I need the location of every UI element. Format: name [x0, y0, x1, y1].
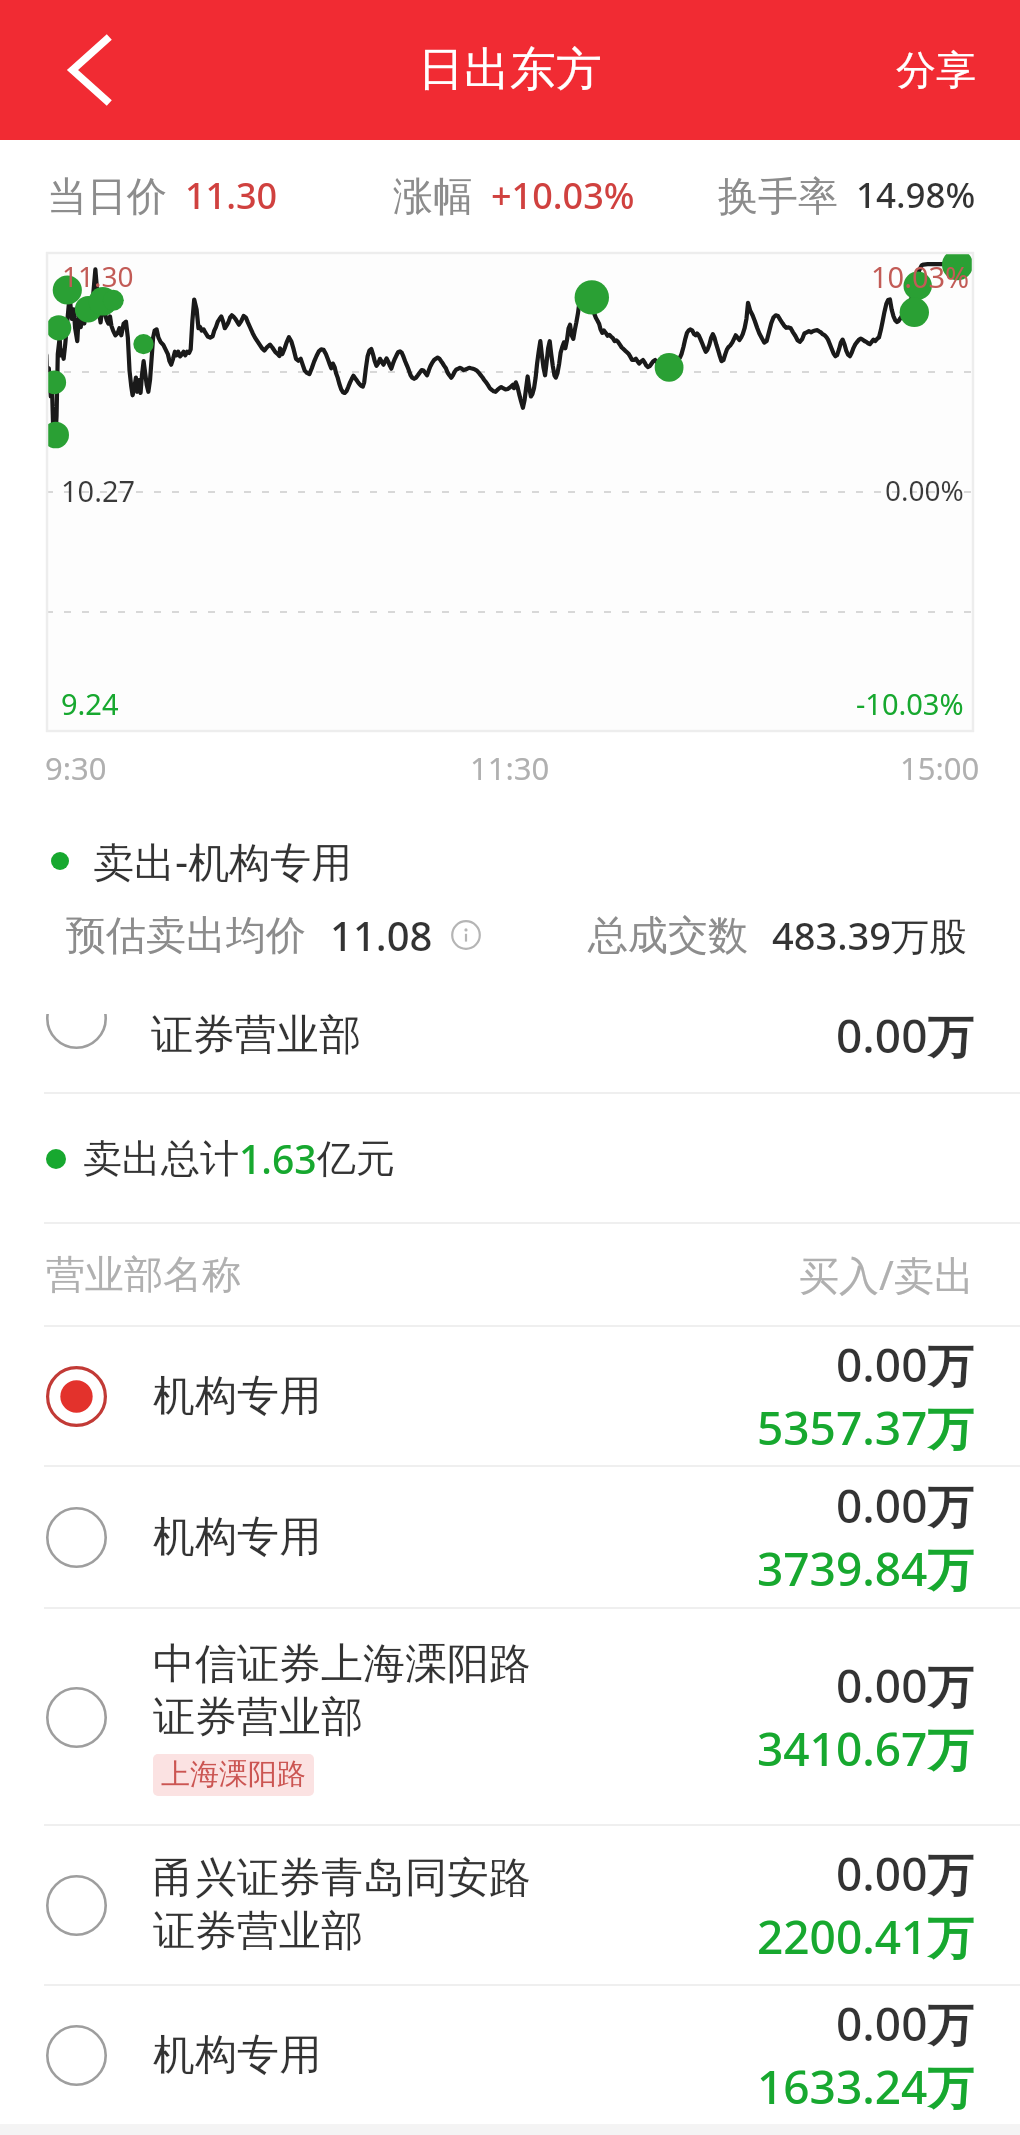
staticText: -10.03%	[856, 684, 964, 723]
staticText: 2200.41万	[757, 1905, 974, 1968]
staticText: 证券营业部	[153, 1691, 363, 1744]
staticText: 分享	[896, 45, 976, 95]
staticText: 营业部名称	[46, 1250, 241, 1299]
staticText: 3410.67万	[757, 1717, 974, 1780]
staticText: 卖出总计	[83, 1134, 239, 1183]
staticText: 亿元	[317, 1134, 395, 1183]
button[interactable]: Back	[0, 0, 160, 140]
staticText: +10.03%	[491, 171, 635, 220]
staticText: 11.30	[185, 171, 278, 220]
staticText: 11.08	[330, 908, 433, 962]
staticText: 卖出-机构专用	[93, 833, 353, 889]
staticText: 1.63	[239, 1132, 317, 1185]
staticText: 15:00	[900, 747, 980, 789]
staticText: 10.27	[61, 471, 136, 510]
staticText: 证券营业部	[151, 1009, 361, 1062]
button[interactable]: 分享	[860, 0, 1020, 140]
staticText: 中信证券上海溧阳路	[153, 1638, 531, 1691]
staticText: 换手率	[718, 171, 838, 221]
staticText: 0.00万	[836, 1842, 974, 1905]
staticText: 0.00%	[885, 471, 964, 509]
staticText: 3739.84万	[757, 1537, 974, 1600]
staticText: 483.39万股	[772, 909, 968, 961]
staticText: 日出东方	[418, 41, 602, 99]
button[interactable]: 甬兴证券青岛同安路	[0, 1826, 1020, 1984]
staticText: 上海溧阳路	[161, 1756, 306, 1793]
staticText: 买入/卖出	[799, 1247, 974, 1302]
staticText: 0.00万	[836, 1654, 974, 1717]
staticText: 总成交数	[588, 910, 748, 960]
staticText: 0.00万	[836, 1004, 974, 1067]
button[interactable]: 机构专用	[0, 1467, 1020, 1607]
staticText: 涨幅	[393, 171, 473, 221]
staticText: 1633.24万	[757, 2055, 974, 2118]
staticText: 0.00万	[836, 1992, 974, 2055]
staticText: 机构专用	[153, 2029, 321, 2082]
button[interactable]: 机构专用	[0, 1986, 1020, 2124]
staticText: 机构专用	[153, 1511, 321, 1564]
staticText: 9:30	[45, 747, 107, 789]
staticText: 0.00万	[836, 1474, 974, 1537]
staticText: 14.98%	[856, 171, 976, 219]
staticText: 机构专用	[153, 1370, 321, 1423]
button[interactable]: 中信证券上海溧阳路	[0, 1609, 1020, 1824]
staticText: 11.30	[62, 257, 134, 295]
staticText: 5357.37万	[757, 1396, 974, 1459]
staticText: 甬兴证券青岛同安路	[153, 1852, 531, 1905]
staticText: 10.03%	[871, 257, 970, 296]
staticText: 预估卖出均价	[66, 910, 306, 960]
staticText: 9.24	[61, 684, 119, 723]
staticText: 11:30	[470, 747, 550, 789]
staticText: 当日价	[47, 171, 167, 221]
staticText: 0.00万	[836, 1333, 974, 1396]
button[interactable]: 机构专用	[0, 1327, 1020, 1465]
staticText: 证券营业部	[153, 1905, 363, 1958]
